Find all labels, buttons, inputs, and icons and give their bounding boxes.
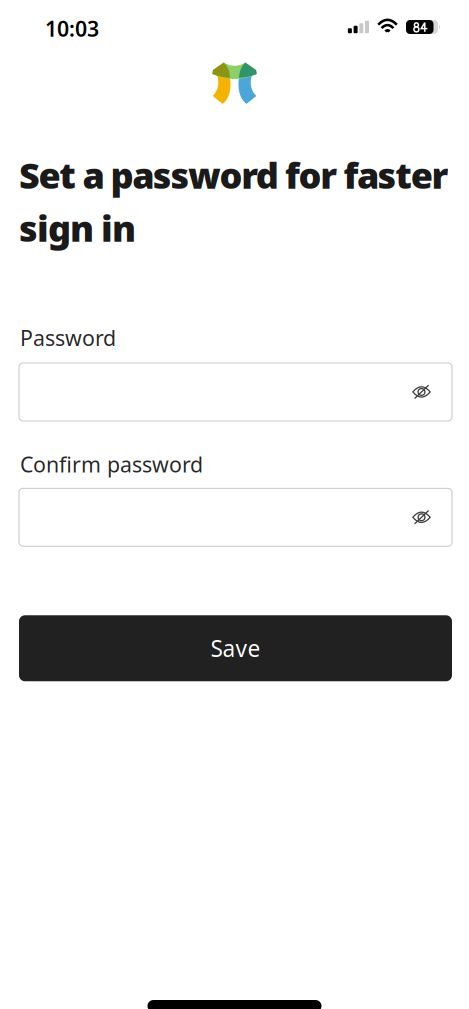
button[interactable]: Show password	[404, 502, 439, 532]
button[interactable]: Show password	[404, 377, 439, 407]
staticText: Set a password for faster	[19, 151, 448, 199]
staticText: Password	[20, 324, 116, 352]
staticText: Confirm password	[20, 450, 203, 478]
staticText: Save	[210, 633, 260, 663]
button[interactable]: Save	[19, 615, 452, 681]
staticText: 10:03	[45, 14, 99, 43]
staticText: sign in	[19, 204, 136, 252]
